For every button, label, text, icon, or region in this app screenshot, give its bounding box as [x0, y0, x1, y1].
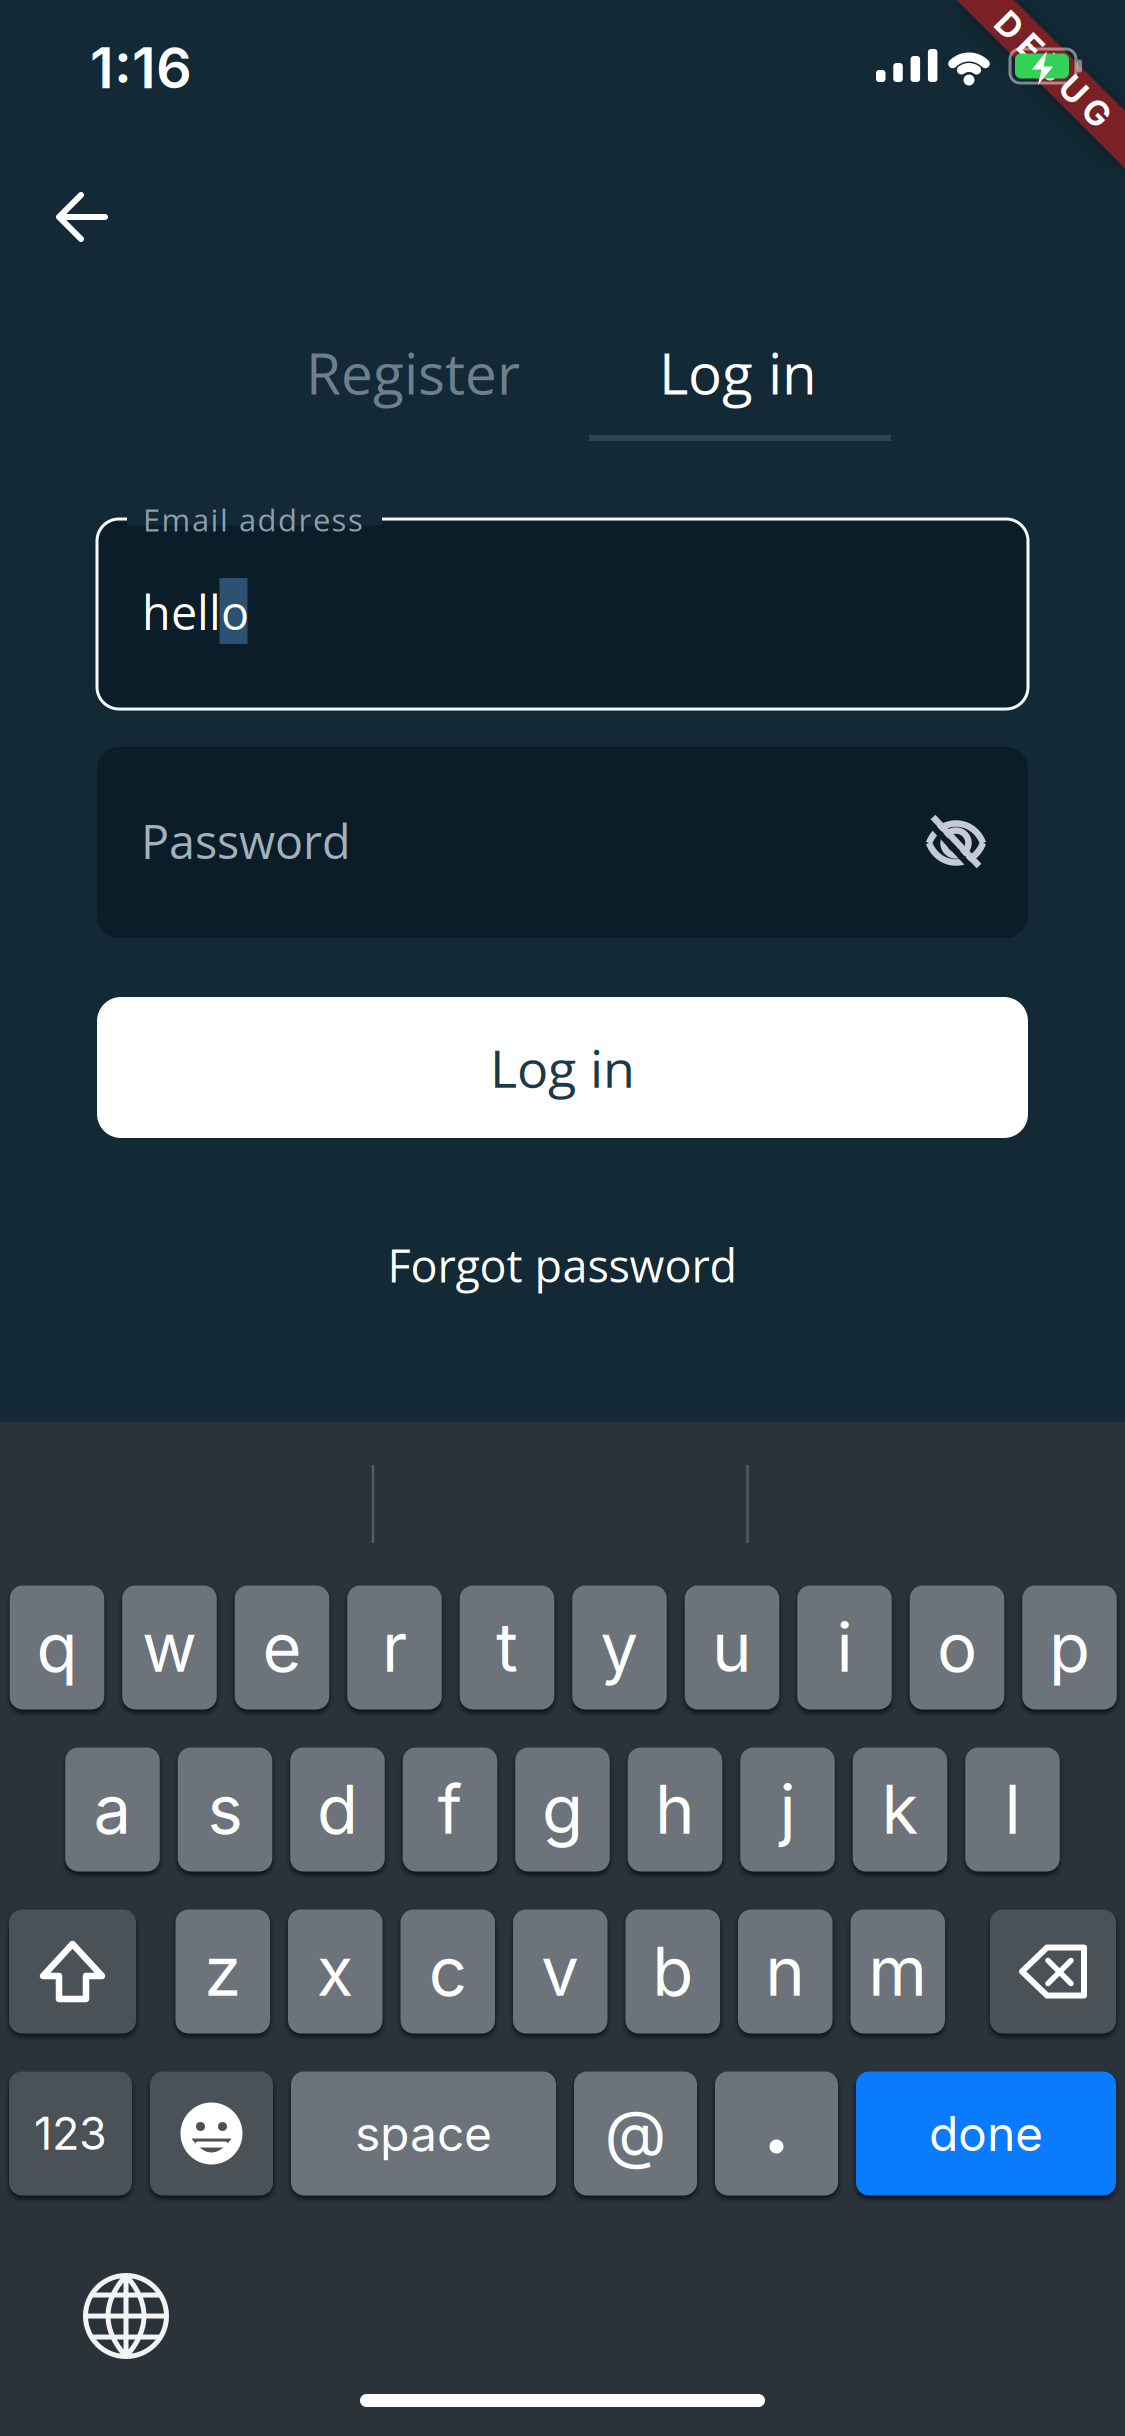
button[interactable]: j: [740, 1747, 835, 1871]
button[interactable]: n: [738, 1909, 832, 2033]
button[interactable]: w: [122, 1585, 217, 1709]
button[interactable]: f: [403, 1747, 497, 1871]
staticText: Password: [141, 809, 351, 873]
staticText: p: [1049, 1607, 1090, 1688]
staticText: e: [262, 1607, 301, 1688]
staticText: z: [204, 1931, 241, 2012]
button[interactable]: Log in: [97, 997, 1028, 1138]
button[interactable]: x: [288, 1909, 382, 2033]
staticText: Forgot password: [387, 1234, 737, 1296]
staticText: b: [652, 1931, 693, 2012]
staticText: Log in: [659, 334, 817, 411]
staticText: w: [142, 1607, 197, 1688]
button[interactable]: .: [715, 2071, 838, 2195]
button[interactable]: u: [685, 1585, 779, 1709]
button[interactable]: t: [460, 1585, 554, 1709]
staticText: 1:16: [90, 34, 192, 102]
staticText: t: [496, 1607, 518, 1688]
button[interactable]: Log in: [573, 312, 903, 432]
staticText: c: [429, 1931, 467, 2012]
button[interactable]: Password: [97, 747, 1028, 938]
button[interactable]: o: [910, 1585, 1004, 1709]
staticText: f: [437, 1769, 462, 1850]
staticText: q: [36, 1607, 77, 1688]
button[interactable]: g: [515, 1747, 610, 1871]
button[interactable]: y: [572, 1585, 667, 1709]
button[interactable]: r: [347, 1585, 442, 1709]
button[interactable]: space: [291, 2071, 556, 2195]
staticText: Register: [306, 334, 520, 411]
button[interactable]: Back: [57, 193, 107, 241]
staticText: i: [836, 1607, 852, 1688]
button[interactable]: Register: [248, 312, 578, 432]
staticText: Email address: [143, 498, 363, 541]
staticText: y: [600, 1607, 638, 1688]
staticText: @: [604, 2095, 666, 2172]
button[interactable]: c: [400, 1909, 495, 2033]
staticText: l: [1004, 1769, 1020, 1850]
staticText: h: [655, 1769, 695, 1850]
staticText: done: [929, 2104, 1043, 2163]
button[interactable]: m: [850, 1909, 945, 2033]
staticText: o: [937, 1607, 977, 1688]
staticText: hello: [142, 580, 249, 644]
button[interactable]: e: [235, 1585, 329, 1709]
button[interactable]: b: [625, 1909, 720, 2033]
staticText: x: [317, 1931, 354, 2012]
staticText: v: [541, 1931, 579, 2012]
staticText: g: [542, 1769, 583, 1850]
button[interactable]: Shift: [9, 1909, 136, 2033]
staticText: space: [355, 2104, 492, 2163]
button[interactable]: h: [628, 1747, 722, 1871]
button[interactable]: done: [856, 2071, 1116, 2195]
staticText: r: [382, 1607, 407, 1688]
button[interactable]: l: [965, 1747, 1060, 1871]
staticText: a: [93, 1769, 131, 1850]
button[interactable]: s: [178, 1747, 272, 1871]
button[interactable]: Email address: [97, 519, 1028, 709]
button[interactable]: Show password: [926, 815, 986, 871]
staticText: 123: [34, 2106, 107, 2161]
button[interactable]: Forgot password: [212, 1220, 912, 1310]
button[interactable]: Delete: [990, 1909, 1116, 2033]
button[interactable]: Emoji: [150, 2071, 273, 2195]
staticText: s: [207, 1769, 242, 1850]
button[interactable]: q: [10, 1585, 104, 1709]
staticText: u: [712, 1607, 752, 1688]
staticText: n: [765, 1931, 805, 2012]
staticText: j: [779, 1769, 795, 1850]
button[interactable]: z: [175, 1909, 270, 2033]
staticText: DEBUG: [979, 48, 1125, 89]
staticText: Log in: [490, 1032, 635, 1103]
button[interactable]: a: [65, 1747, 160, 1871]
button[interactable]: k: [853, 1747, 947, 1871]
button[interactable]: @: [574, 2071, 697, 2195]
button[interactable]: d: [290, 1747, 385, 1871]
staticText: k: [881, 1769, 918, 1850]
staticText: d: [317, 1769, 358, 1850]
button[interactable]: 123: [9, 2071, 132, 2195]
button[interactable]: i: [797, 1585, 892, 1709]
button[interactable]: v: [513, 1909, 607, 2033]
staticText: m: [868, 1931, 927, 2012]
button[interactable]: Next keyboard: [83, 2273, 169, 2359]
button[interactable]: p: [1022, 1585, 1117, 1709]
